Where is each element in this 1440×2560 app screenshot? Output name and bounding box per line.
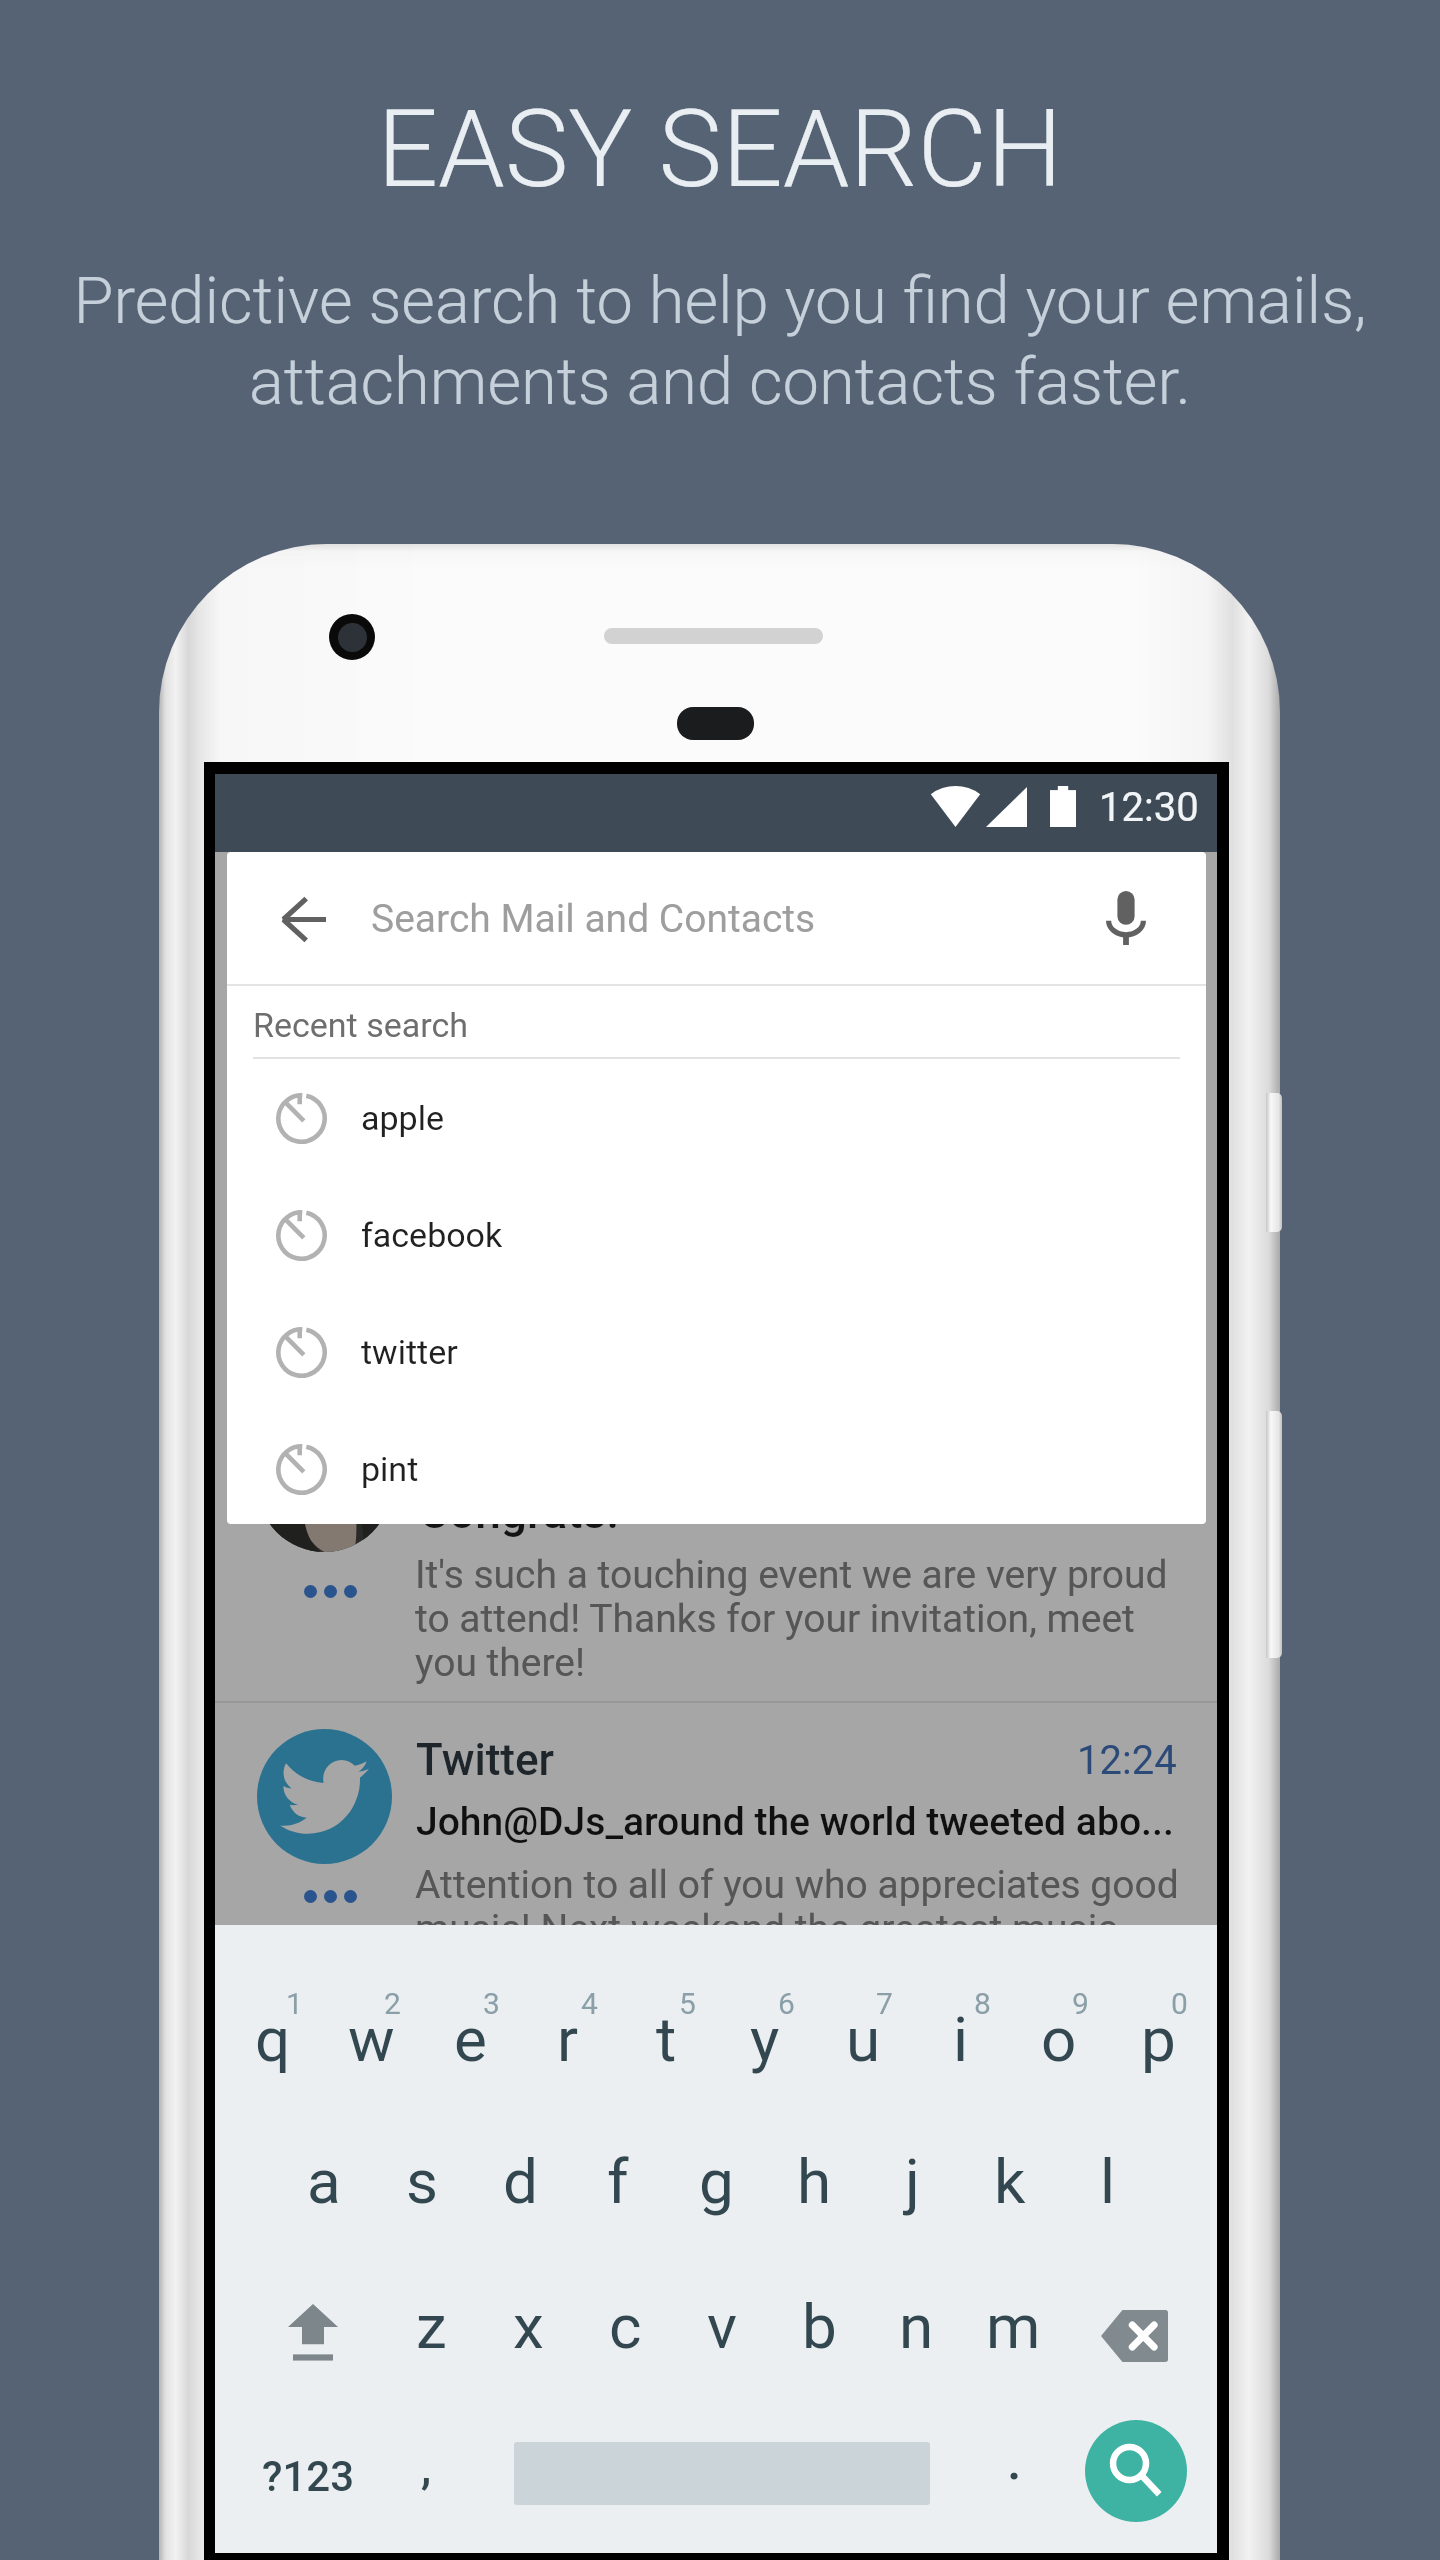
button[interactable]: ?123 [235,2417,380,2529]
staticText: . [1007,2431,1022,2492]
staticText: EASY SEARCH [0,87,1440,212]
button[interactable]: m [965,2270,1062,2382]
staticText: q [255,2003,291,2076]
button[interactable]: 8 [912,1967,1010,2079]
staticText: pint [361,1449,419,1489]
button[interactable]: j [863,2125,961,2237]
button[interactable] [227,852,1206,984]
staticText: twitter [361,1332,458,1372]
button[interactable] [215,1703,1217,1925]
staticText: 12:24 [1077,1737,1177,1784]
button[interactable]: Shift [264,2280,362,2392]
staticText: apple [361,1098,444,1138]
staticText: j [905,2145,920,2218]
button[interactable]: , [378,2417,474,2529]
staticText: facebook [361,1215,503,1255]
staticText: h [797,2145,832,2218]
button[interactable]: apple [227,1060,1206,1177]
button[interactable]: a [275,2125,373,2237]
staticText: p [1141,2003,1176,2076]
button[interactable]: Space [499,2417,945,2529]
staticText: 4 [581,1986,598,2021]
staticText: It's such a touching event we are very p… [415,1552,1168,1685]
staticText: 3 [483,1986,500,2021]
staticText: w [348,2003,395,2076]
staticText: s [406,2145,438,2218]
button[interactable]: Voice search [1085,878,1165,958]
staticText: m [986,2290,1041,2363]
staticText: l [1100,2145,1116,2218]
button[interactable]: 9 [1010,1967,1108,2079]
button[interactable]: Back [267,883,339,955]
staticText: n [899,2290,934,2363]
staticText: 6 [778,1986,795,2021]
staticText: Search Mail and Contacts [371,896,816,942]
staticText: 5 [679,1986,696,2021]
staticText: 8 [974,1986,991,2021]
staticText: z [416,2290,447,2363]
button[interactable]: k [961,2125,1059,2237]
staticText: John@DJs_around the world tweeted abo... [416,1799,1174,1845]
button[interactable]: l [1059,2125,1157,2237]
staticText: ?123 [262,2452,355,2501]
staticText: 7 [876,1986,893,2021]
button[interactable] [215,1412,1217,1701]
staticText: Predictive search to help you find your … [0,263,1440,420]
staticText: 2 [384,1986,401,2021]
staticText: 1 [286,1986,303,2021]
button[interactable]: Search [1085,2420,1187,2522]
button[interactable]: n [868,2270,965,2382]
button[interactable]: 1 [224,1967,322,2079]
button[interactable]: c [577,2270,674,2382]
staticText: Recent search [253,1005,468,1045]
staticText: r [557,2003,579,2076]
button[interactable]: 4 [519,1967,617,2079]
button[interactable]: . [966,2417,1062,2529]
staticText: 12:30 [1099,784,1199,831]
button[interactable]: Backspace [1085,2280,1183,2392]
button[interactable]: 3 [421,1967,519,2079]
button[interactable]: s [373,2125,471,2237]
staticText: f [607,2145,629,2218]
staticText: x [513,2290,544,2363]
staticText: u [846,2003,881,2076]
button[interactable]: twitter [227,1294,1206,1411]
button[interactable]: g [667,2125,765,2237]
staticText: o [1041,2003,1077,2076]
staticText: , [421,2440,432,2494]
button[interactable]: 2 [322,1967,420,2079]
staticText: Attention to all of you who appreciates … [415,1862,1179,1925]
staticText: d [503,2145,538,2218]
staticText: 9 [1072,1986,1089,2021]
button[interactable]: x [480,2270,577,2382]
button[interactable]: v [674,2270,771,2382]
button[interactable]: h [765,2125,863,2237]
button[interactable]: 0 [1109,1967,1207,2079]
staticText: c [609,2290,642,2363]
staticText: k [994,2145,1026,2218]
button[interactable]: pint [227,1411,1206,1524]
staticText: i [953,2003,969,2076]
button[interactable]: 6 [716,1967,814,2079]
staticText: Twitter [416,1734,555,1786]
button[interactable]: 5 [617,1967,715,2079]
staticText: v [707,2290,738,2363]
button[interactable]: b [771,2270,868,2382]
staticText: y [750,2003,780,2076]
staticText: Congrats! [419,1485,619,1539]
button[interactable]: f [569,2125,667,2237]
button[interactable]: z [383,2270,480,2382]
staticText: a [307,2145,341,2218]
button[interactable]: facebook [227,1177,1206,1294]
staticText: g [699,2145,734,2218]
staticText: e [454,2003,487,2076]
staticText: 0 [1171,1986,1188,2021]
staticText: t [656,2003,677,2076]
staticText: b [802,2290,837,2363]
button[interactable]: 7 [814,1967,912,2079]
button[interactable]: d [471,2125,569,2237]
